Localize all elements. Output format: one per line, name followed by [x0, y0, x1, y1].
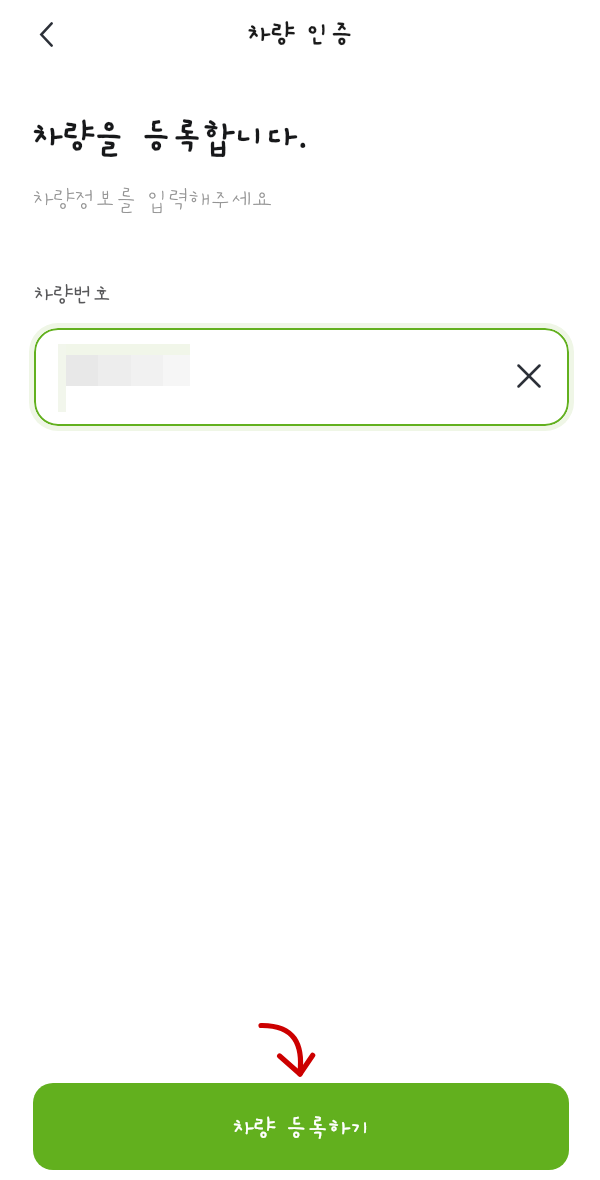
button[interactable]: Clear: [505, 352, 553, 400]
staticText: 차량 인증: [0, 21, 600, 50]
button[interactable]: 차량 등록하기: [33, 1083, 569, 1170]
staticText: 차량번호: [33, 284, 112, 308]
button[interactable]: Back: [22, 11, 70, 59]
staticText: 차량 등록하기: [232, 1116, 371, 1142]
button[interactable]: 차량번호 입력: [34, 328, 569, 426]
staticText: 차량을 등록합니다.: [31, 119, 310, 157]
staticText: 차량정보를 입력해주세요: [32, 188, 273, 213]
